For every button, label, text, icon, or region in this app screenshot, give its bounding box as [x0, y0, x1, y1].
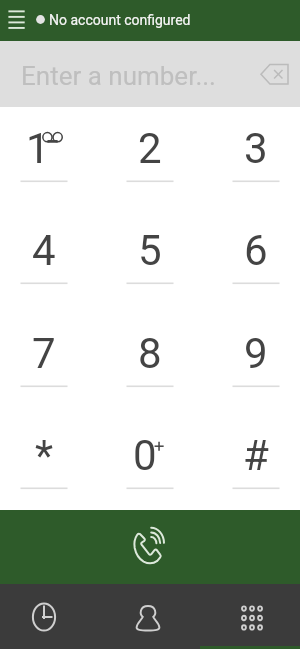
- staticText: 6: [244, 226, 268, 275]
- button[interactable]: 2: [97, 107, 203, 210]
- staticText: #: [243, 431, 269, 480]
- staticText: 2: [138, 124, 162, 173]
- staticText: 9: [244, 329, 268, 378]
- staticText: 4: [32, 226, 56, 275]
- staticText: 8: [138, 329, 162, 378]
- button[interactable]: 7: [0, 312, 97, 415]
- staticText: *: [35, 431, 54, 480]
- staticText: 3: [244, 124, 268, 173]
- staticText: 5: [138, 226, 162, 275]
- button[interactable]: Contacts: [100, 584, 200, 649]
- button[interactable]: #: [203, 414, 300, 517]
- staticText: 7: [32, 329, 56, 378]
- button[interactable]: 8: [97, 312, 203, 415]
- button[interactable]: 1: [0, 107, 97, 210]
- staticText: 0: [133, 431, 157, 480]
- button[interactable]: 6: [203, 209, 300, 312]
- staticText: 1: [26, 124, 50, 173]
- button[interactable]: 5: [97, 209, 203, 312]
- button[interactable]: 0: [97, 414, 203, 517]
- button[interactable]: Backspace: [258, 41, 300, 107]
- button[interactable]: 3: [203, 107, 300, 210]
- button[interactable]: Recent calls: [0, 584, 100, 649]
- button[interactable]: Open navigation menu: [0, 0, 33, 41]
- button[interactable]: Call: [0, 510, 300, 584]
- staticText: No account configured: [49, 12, 191, 28]
- button[interactable]: 9: [203, 312, 300, 415]
- button[interactable]: 4: [0, 209, 97, 312]
- button[interactable]: *: [0, 414, 97, 517]
- button[interactable]: Dialpad: [200, 584, 300, 649]
- staticText: Enter a number...: [21, 61, 216, 91]
